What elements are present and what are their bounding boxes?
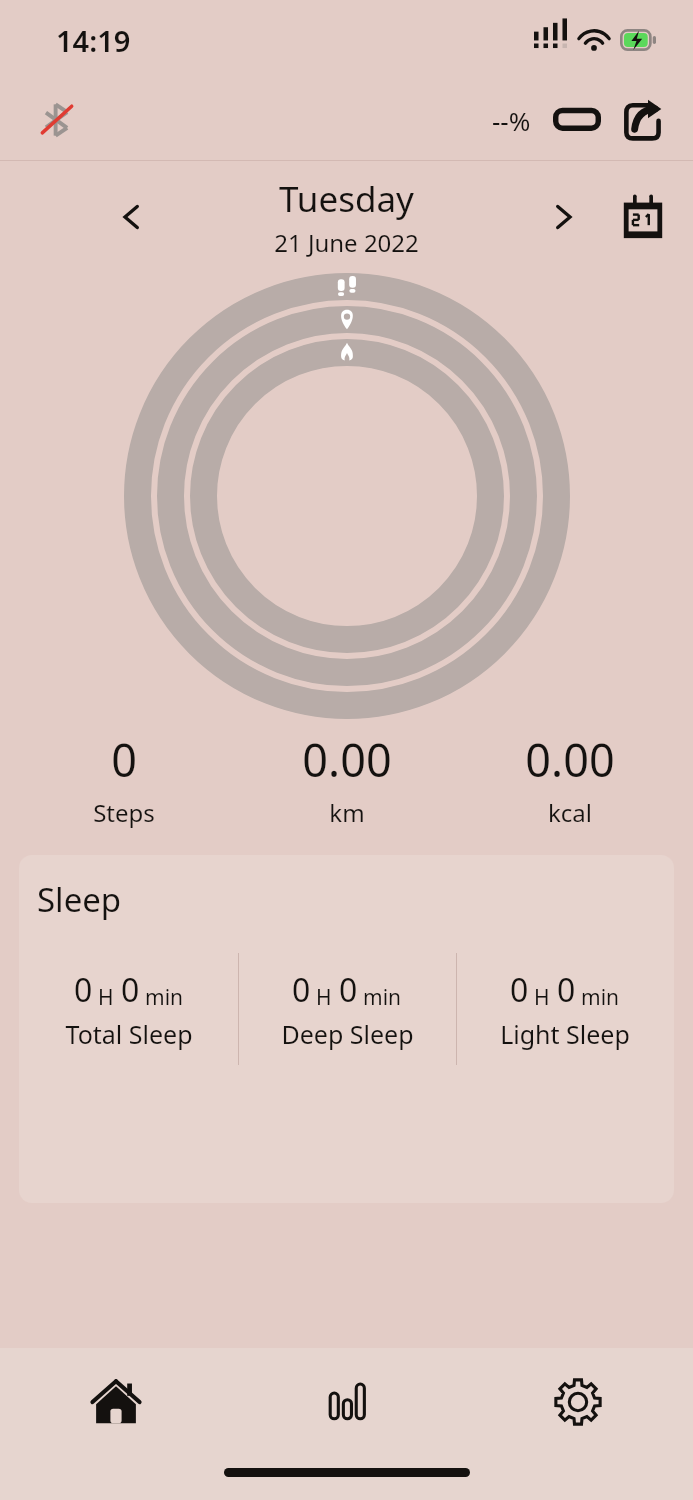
button[interactable]: Pick date — [619, 193, 667, 241]
button[interactable]: Statistics — [231, 1348, 462, 1456]
staticText: Deep Sleep — [281, 1017, 414, 1051]
staticText: kcal — [548, 796, 592, 829]
staticText: 0.00 — [525, 729, 615, 790]
staticText: Tuesday — [279, 175, 414, 223]
button[interactable]: Next day — [541, 195, 585, 239]
staticText: km — [329, 796, 365, 829]
staticText: 0 — [74, 968, 93, 1012]
staticText: 0 — [510, 968, 529, 1012]
staticText: 0.00 — [302, 729, 392, 790]
button[interactable]: Home — [0, 1348, 231, 1456]
button[interactable]: Share — [619, 97, 665, 143]
staticText: 14:19 — [56, 21, 131, 60]
staticText: H — [534, 983, 550, 1012]
staticText: 21 June 2022 — [274, 226, 419, 259]
button[interactable]: 0.00 — [458, 725, 681, 833]
button[interactable]: 0.00 — [235, 725, 458, 833]
button[interactable]: Bluetooth disconnected — [34, 97, 80, 143]
button[interactable]: Sleep — [19, 855, 674, 1203]
staticText: 0 — [111, 729, 137, 790]
staticText: H — [316, 983, 332, 1012]
staticText: 0 — [292, 968, 311, 1012]
button[interactable]: Activity rings — [124, 273, 570, 719]
staticText: H — [98, 983, 114, 1012]
staticText: 0 — [339, 968, 358, 1012]
staticText: Total Sleep — [65, 1017, 193, 1051]
button[interactable]: 0 — [12, 725, 235, 833]
staticText: min — [581, 983, 620, 1012]
staticText: Light Sleep — [500, 1017, 630, 1051]
staticText: --% — [492, 103, 531, 138]
button[interactable]: Settings — [462, 1348, 693, 1456]
staticText: 0 — [121, 968, 140, 1012]
button[interactable]: Previous day — [110, 195, 154, 239]
staticText: Steps — [93, 796, 155, 829]
staticText: min — [145, 983, 184, 1012]
staticText: 0 — [557, 968, 576, 1012]
staticText: min — [363, 983, 402, 1012]
staticText: Sleep — [37, 877, 122, 922]
button[interactable]: Battery — [553, 103, 601, 137]
